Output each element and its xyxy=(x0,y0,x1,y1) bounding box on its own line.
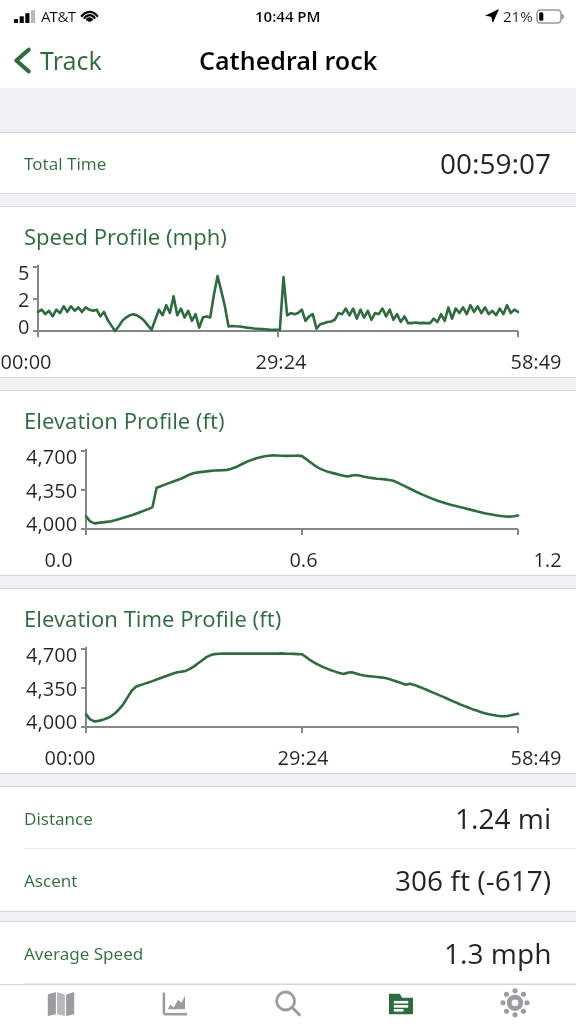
staticText: Cathedral rock xyxy=(199,43,378,77)
staticText: 4,000 xyxy=(26,510,78,537)
button[interactable]: Search xyxy=(236,985,340,1024)
button[interactable]: Settings xyxy=(463,985,567,1024)
button[interactable]: Speed Profile (mph) xyxy=(0,207,576,377)
staticText: 4,700 xyxy=(26,641,78,668)
staticText: 0 xyxy=(18,313,30,339)
staticText: Elevation Profile (ft) xyxy=(24,405,225,435)
staticText: 306 ft (-617) xyxy=(395,861,552,899)
staticText: 1.2 xyxy=(533,546,562,573)
button[interactable]: Trip xyxy=(123,985,227,1024)
staticText: Speed Profile (mph) xyxy=(24,221,227,251)
staticText: Track xyxy=(40,43,102,77)
staticText: 4,350 xyxy=(26,477,78,504)
staticText: 0.0 xyxy=(44,546,73,573)
button[interactable]: Saved xyxy=(349,985,453,1024)
staticText: Total Time xyxy=(24,152,107,175)
staticText: 21% xyxy=(503,6,533,26)
staticText: 29:24 xyxy=(255,348,307,375)
button[interactable]: Total Time xyxy=(0,133,576,193)
staticText: 00:59:07 xyxy=(440,144,552,182)
staticText: Distance xyxy=(24,807,93,830)
button[interactable]: Map xyxy=(9,985,113,1024)
button[interactable]: Elevation Time Profile (ft) xyxy=(0,589,576,773)
button[interactable]: Ascent xyxy=(0,849,576,911)
staticText: 0.6 xyxy=(289,546,318,573)
staticText: 10:44 PM xyxy=(255,6,321,26)
staticText: 58:49 xyxy=(510,744,562,771)
staticText: 00:00 xyxy=(0,348,52,375)
staticText: Elevation Time Profile (ft) xyxy=(24,603,282,633)
staticText: 00:00 xyxy=(44,744,96,771)
button[interactable]: Elevation Profile (ft) xyxy=(0,391,576,575)
button[interactable]: Distance xyxy=(0,787,576,849)
button[interactable]: Track xyxy=(0,37,112,83)
staticText: 4,350 xyxy=(26,675,78,702)
staticText: 4,700 xyxy=(26,443,78,470)
staticText: 58:49 xyxy=(510,348,562,375)
staticText: AT&T xyxy=(41,6,76,26)
button[interactable]: Average Speed xyxy=(0,922,576,984)
staticText: 1.24 mi xyxy=(455,799,552,837)
staticText: Ascent xyxy=(24,869,78,892)
staticText: 29:24 xyxy=(277,744,329,771)
staticText: Average Speed xyxy=(24,942,144,965)
staticText: 1.3 mph xyxy=(444,934,552,972)
staticText: 4,000 xyxy=(26,708,78,735)
staticText: 5 xyxy=(18,259,30,286)
staticText: 2 xyxy=(18,286,30,313)
